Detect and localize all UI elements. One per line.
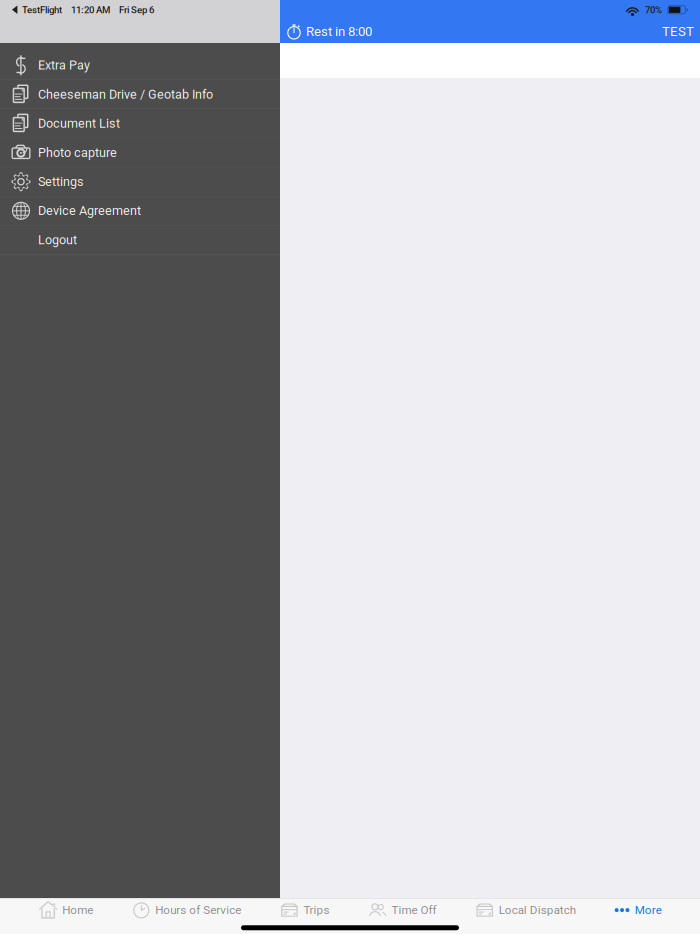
staticText: Hours of Service bbox=[155, 903, 241, 917]
staticText: Logout bbox=[38, 232, 77, 247]
staticText: Time Off bbox=[392, 903, 437, 917]
button[interactable]: Trips bbox=[279, 898, 329, 921]
button[interactable]: Home bbox=[38, 898, 93, 921]
button[interactable]: TEST bbox=[662, 20, 694, 43]
button[interactable]: Time Off bbox=[368, 898, 437, 921]
button[interactable]: Cheeseman Drive / Geotab Info bbox=[0, 80, 280, 109]
button[interactable]: Local Dispatch bbox=[475, 898, 576, 921]
button[interactable]: Settings bbox=[0, 167, 280, 196]
staticText: More bbox=[635, 903, 662, 917]
button[interactable]: Photo capture bbox=[0, 138, 280, 167]
staticText: 70% bbox=[645, 4, 662, 16]
staticText: Settings bbox=[38, 174, 84, 189]
staticText: Photo capture bbox=[38, 145, 117, 160]
staticText: 11:20 AM bbox=[71, 4, 110, 16]
staticText: Extra Pay bbox=[38, 58, 90, 73]
staticText: Device Agreement bbox=[38, 203, 141, 218]
staticText: TestFlight bbox=[22, 4, 62, 16]
button[interactable]: Extra Pay bbox=[0, 51, 280, 80]
button[interactable]: Rest in 8:00 bbox=[286, 20, 372, 43]
button[interactable]: Document List bbox=[0, 109, 280, 138]
staticText: TEST bbox=[662, 24, 694, 39]
staticText: Home bbox=[62, 903, 93, 917]
staticText: Local Dispatch bbox=[499, 903, 576, 917]
staticText: Trips bbox=[303, 903, 329, 917]
staticText: Fri Sep 6 bbox=[119, 4, 154, 16]
staticText: Rest in 8:00 bbox=[306, 24, 372, 39]
button[interactable]: Logout bbox=[0, 226, 280, 254]
button[interactable]: Device Agreement bbox=[0, 196, 280, 225]
button[interactable]: Hours of Service bbox=[131, 898, 241, 921]
button[interactable]: More bbox=[614, 898, 662, 921]
staticText: Document List bbox=[38, 116, 120, 131]
staticText: Cheeseman Drive / Geotab Info bbox=[38, 87, 213, 102]
